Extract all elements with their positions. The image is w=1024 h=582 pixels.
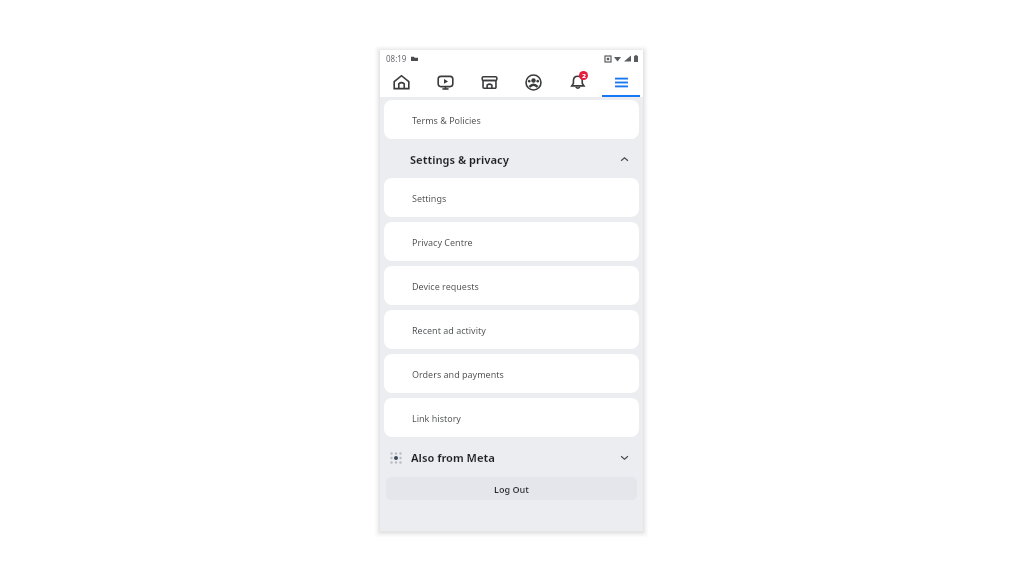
button[interactable]: Marketplace	[467, 67, 511, 97]
button[interactable]: Terms & Policies	[384, 100, 639, 139]
button[interactable]: Recent ad activity	[384, 310, 639, 349]
staticText: 08:19	[386, 53, 407, 64]
button[interactable]: Video	[423, 67, 467, 97]
button[interactable]: Orders and payments	[384, 354, 639, 393]
staticText: Terms & Policies	[412, 114, 481, 126]
staticText: Orders and payments	[412, 368, 504, 380]
button[interactable]: Log Out	[386, 477, 637, 500]
button[interactable]: Settings & privacy	[380, 144, 643, 175]
staticText: 2	[582, 72, 586, 80]
staticText: Settings & privacy	[410, 152, 510, 167]
staticText: Device requests	[412, 280, 479, 292]
staticText: Recent ad activity	[412, 324, 486, 336]
button[interactable]: Groups	[511, 67, 555, 97]
button[interactable]: Settings	[384, 178, 639, 217]
button[interactable]: Notifications	[555, 67, 599, 97]
button[interactable]: Device requests	[384, 266, 639, 305]
staticText: Link history	[412, 412, 461, 424]
button[interactable]: Home	[380, 67, 423, 97]
button[interactable]: Menu	[599, 67, 643, 97]
staticText: Privacy Centre	[412, 236, 473, 248]
staticText: Log Out	[494, 483, 529, 495]
button[interactable]: Privacy Centre	[384, 222, 639, 261]
staticText: Also from Meta	[411, 450, 495, 465]
button[interactable]: Link history	[384, 398, 639, 437]
staticText: Settings	[412, 192, 447, 204]
button[interactable]: Also from Meta	[380, 442, 643, 473]
